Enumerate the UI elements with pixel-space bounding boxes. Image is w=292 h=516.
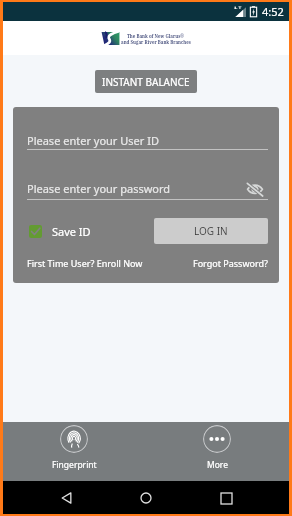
button[interactable]: Back <box>51 482 83 514</box>
button[interactable]: More <box>189 425 245 471</box>
button[interactable]: Save ID <box>27 224 91 239</box>
button[interactable]: Please enter your password <box>27 181 268 196</box>
staticText: 4:52 <box>262 4 284 19</box>
button[interactable]: Fingerprint <box>46 425 102 471</box>
staticText: INSTANT BALANCE <box>102 75 190 89</box>
staticText: Please enter your password <box>27 181 247 196</box>
other: Show password <box>247 182 263 196</box>
button[interactable]: First Time User? Enroll Now <box>27 257 143 269</box>
staticText: and Sugar River Bank Branches <box>121 39 191 45</box>
staticText: Fingerprint <box>52 459 97 471</box>
staticText: First Time User? Enroll Now <box>27 257 143 269</box>
button[interactable]: LOG IN <box>154 218 268 244</box>
button[interactable]: INSTANT BALANCE <box>95 70 197 93</box>
button[interactable]: Recents <box>210 482 242 514</box>
staticText: Forgot Password? <box>193 257 268 269</box>
button[interactable]: Please enter your User ID <box>27 133 268 150</box>
button[interactable]: Home <box>130 482 162 514</box>
staticText: More <box>207 459 228 471</box>
staticText: Save ID <box>52 224 91 239</box>
button[interactable]: Forgot Password? <box>193 257 268 269</box>
staticText: The Bank of New Glarus® <box>127 33 185 39</box>
staticText: Please enter your User ID <box>27 133 159 148</box>
staticText: LOG IN <box>194 224 228 238</box>
